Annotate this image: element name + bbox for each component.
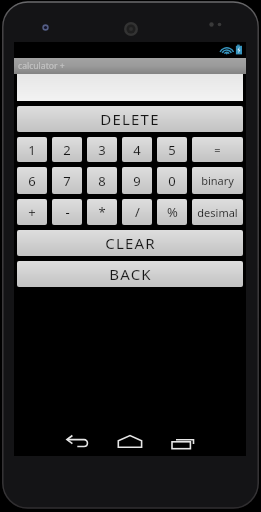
- staticText: CLEAR: [105, 233, 156, 253]
- button[interactable]: CLEAR: [17, 230, 243, 256]
- staticText: /: [135, 203, 140, 221]
- button[interactable]: 8: [87, 167, 117, 194]
- button[interactable]: Recent apps: [167, 430, 199, 450]
- button[interactable]: =: [192, 137, 243, 162]
- button[interactable]: 0: [157, 167, 187, 194]
- button[interactable]: binary: [192, 167, 243, 194]
- staticText: binary: [201, 173, 234, 188]
- button[interactable]: 1: [17, 137, 47, 162]
- staticText: 7: [63, 172, 71, 190]
- button[interactable]: Back: [62, 430, 94, 450]
- button[interactable]: *: [87, 199, 117, 225]
- button[interactable]: +: [17, 199, 47, 225]
- staticText: 2: [63, 141, 71, 159]
- staticText: 8: [98, 172, 106, 190]
- staticText: 5: [168, 141, 176, 159]
- staticText: calculator +: [18, 60, 65, 72]
- button[interactable]: /: [122, 199, 152, 225]
- staticText: =: [214, 142, 221, 157]
- staticText: 9: [133, 172, 141, 190]
- staticText: DELETE: [100, 109, 160, 129]
- button[interactable]: 7: [52, 167, 82, 194]
- staticText: %: [167, 203, 178, 221]
- button[interactable]: DELETE: [17, 106, 243, 132]
- staticText: 6: [28, 172, 36, 190]
- button[interactable]: -: [52, 199, 82, 225]
- staticText: BACK: [109, 264, 152, 284]
- staticText: desimal: [197, 205, 238, 220]
- staticText: -: [65, 203, 70, 221]
- button[interactable]: desimal: [192, 199, 243, 225]
- button[interactable]: 5: [157, 137, 187, 162]
- button[interactable]: 6: [17, 167, 47, 194]
- button[interactable]: 3: [87, 137, 117, 162]
- staticText: *: [98, 203, 106, 221]
- button[interactable]: BACK: [17, 261, 243, 287]
- button[interactable]: Home: [114, 430, 146, 450]
- button[interactable]: 2: [52, 137, 82, 162]
- staticText: 0: [168, 172, 176, 190]
- button[interactable]: %: [157, 199, 187, 225]
- staticText: 1: [28, 141, 36, 159]
- staticText: 4: [133, 141, 141, 159]
- staticText: 3: [98, 141, 106, 159]
- button[interactable]: [17, 74, 243, 101]
- button[interactable]: 4: [122, 137, 152, 162]
- staticText: +: [28, 203, 36, 221]
- button[interactable]: 9: [122, 167, 152, 194]
